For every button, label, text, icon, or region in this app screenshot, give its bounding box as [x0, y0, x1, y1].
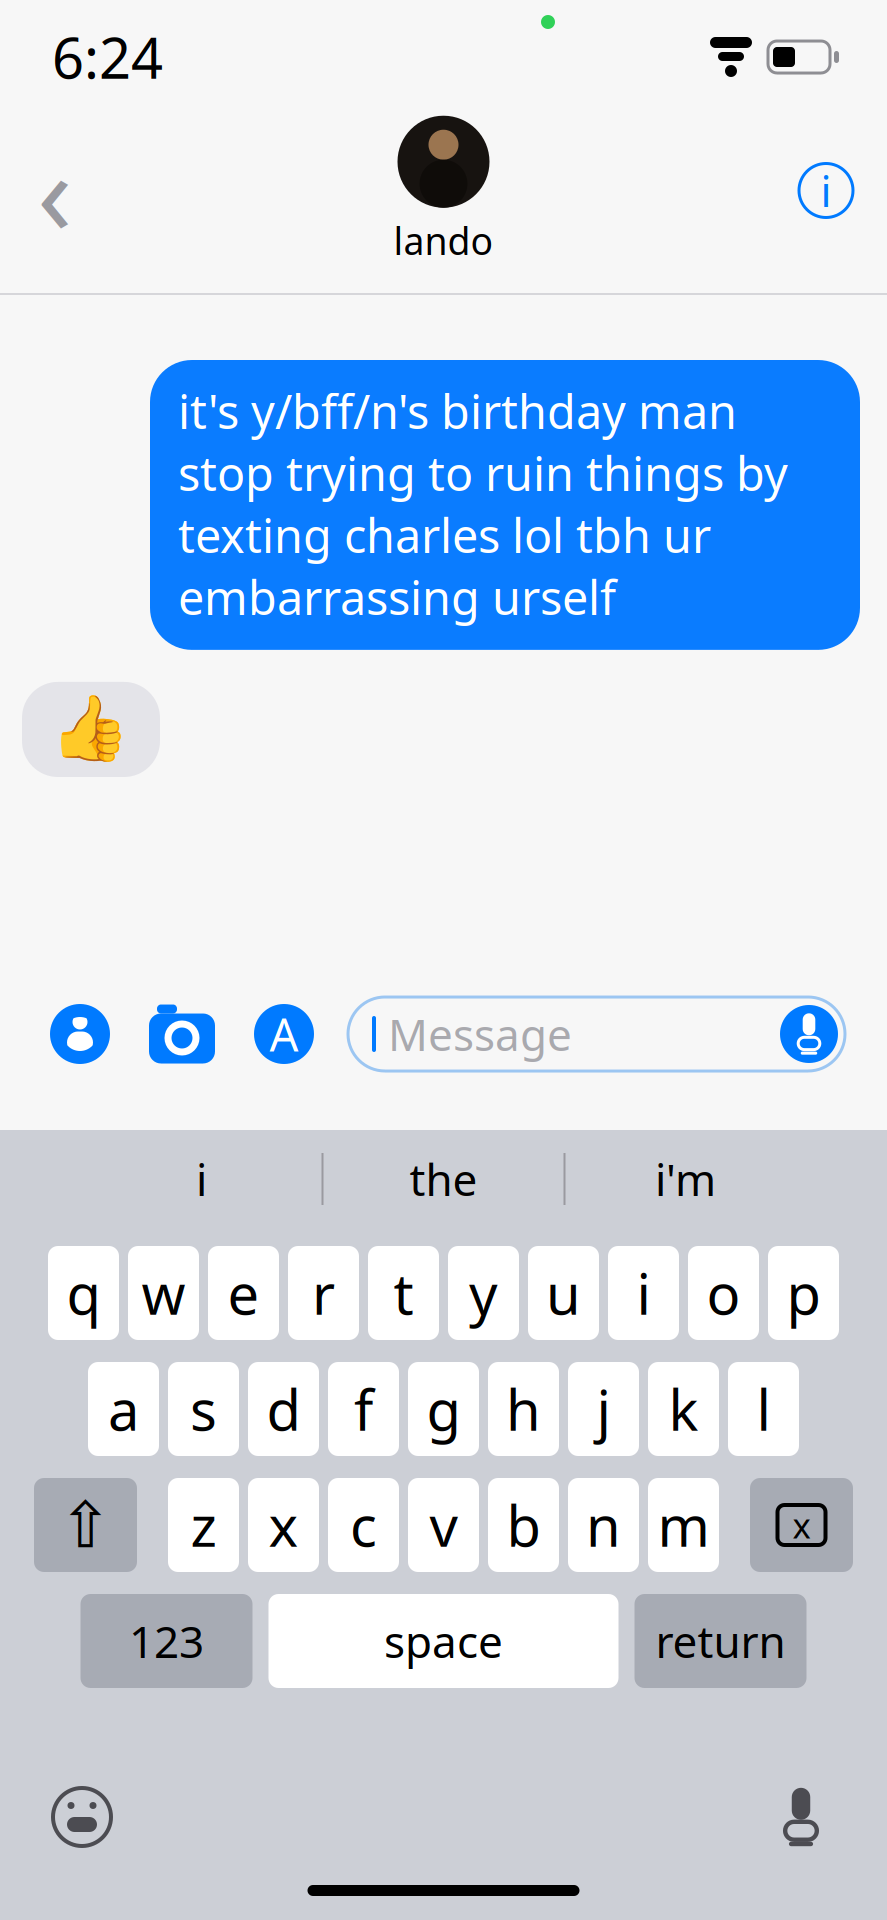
button[interactable]: Emoji keyboard	[40, 1775, 124, 1859]
button[interactable]: Shift	[34, 1478, 137, 1572]
staticText: k	[668, 1372, 698, 1446]
staticText: x	[792, 1502, 810, 1548]
staticText: r	[312, 1256, 335, 1330]
staticText: ‹	[37, 114, 73, 267]
staticText: a	[108, 1372, 139, 1446]
button[interactable]: p	[768, 1246, 839, 1340]
button[interactable]: c	[328, 1478, 399, 1572]
button[interactable]: Apps	[252, 1002, 316, 1066]
button[interactable]: 123	[80, 1594, 252, 1688]
button[interactable]: z	[168, 1478, 239, 1572]
button[interactable]: y	[448, 1246, 519, 1340]
button[interactable]: i	[608, 1246, 679, 1340]
button[interactable]: Dictation	[759, 1775, 843, 1859]
button[interactable]: x	[248, 1478, 319, 1572]
staticText: y	[469, 1256, 498, 1330]
button[interactable]: space	[268, 1594, 618, 1688]
staticText: b	[506, 1488, 540, 1562]
staticText: e	[227, 1256, 259, 1330]
staticText: i	[636, 1256, 650, 1330]
button[interactable]: n	[568, 1478, 639, 1572]
button[interactable]: k	[648, 1362, 719, 1456]
button[interactable]: lando contact photo	[397, 116, 489, 208]
button[interactable]: the	[323, 1130, 563, 1228]
staticText: p	[786, 1256, 820, 1330]
button[interactable]: h	[488, 1362, 559, 1456]
button[interactable]: u	[528, 1246, 599, 1340]
staticText: it's y/bff/n's birthday man stop trying …	[178, 380, 788, 628]
button[interactable]: j	[568, 1362, 639, 1456]
staticText: ⇧	[58, 1489, 112, 1561]
staticText: w	[141, 1256, 185, 1330]
staticText: c	[350, 1488, 377, 1562]
button[interactable]: q	[48, 1246, 119, 1340]
staticText: n	[586, 1488, 621, 1562]
button[interactable]: w	[128, 1246, 199, 1340]
staticText: Message	[388, 1005, 572, 1063]
button[interactable]: Details	[783, 142, 869, 238]
staticText: i	[820, 162, 831, 219]
staticText: lando	[393, 216, 493, 265]
staticText: l	[756, 1372, 770, 1446]
button[interactable]: l	[728, 1362, 799, 1456]
staticText: j	[596, 1372, 610, 1446]
button[interactable]: d	[248, 1362, 319, 1456]
button[interactable]: Camera	[148, 1002, 216, 1066]
button[interactable]: f	[328, 1362, 399, 1456]
button[interactable]: b	[488, 1478, 559, 1572]
staticText: z	[190, 1488, 216, 1562]
button[interactable]: o	[688, 1246, 759, 1340]
button[interactable]: e	[208, 1246, 279, 1340]
button[interactable]: a	[88, 1362, 159, 1456]
button[interactable]: return	[634, 1594, 806, 1688]
staticText: 6:24	[52, 20, 163, 94]
staticText: the	[409, 1150, 477, 1208]
button[interactable]: s	[168, 1362, 239, 1456]
button[interactable]: g	[408, 1362, 479, 1456]
staticText: g	[426, 1372, 460, 1446]
staticText: v	[429, 1488, 457, 1562]
button[interactable]: i	[81, 1130, 321, 1228]
button[interactable]: v	[408, 1478, 479, 1572]
staticText: q	[66, 1256, 100, 1330]
staticText: h	[506, 1372, 541, 1446]
button[interactable]: r	[288, 1246, 359, 1340]
button[interactable]: i'm	[565, 1130, 805, 1228]
button[interactable]: Back	[12, 142, 98, 238]
staticText: i	[196, 1150, 207, 1208]
button[interactable]: Message text field	[348, 997, 845, 1071]
button[interactable]: App Store	[48, 1002, 112, 1066]
button[interactable]: Delete	[750, 1478, 853, 1572]
staticText: o	[706, 1256, 740, 1330]
staticText: f	[354, 1372, 373, 1446]
staticText: space	[384, 1612, 503, 1670]
staticText: x	[268, 1488, 298, 1562]
staticText: i'm	[655, 1150, 716, 1208]
staticText: u	[546, 1256, 581, 1330]
staticText: A	[269, 1004, 298, 1064]
staticText: d	[266, 1372, 300, 1446]
staticText: 123	[129, 1612, 204, 1670]
button[interactable]: m	[648, 1478, 719, 1572]
button[interactable]: t	[368, 1246, 439, 1340]
staticText: m	[657, 1488, 709, 1562]
staticText: t	[393, 1256, 413, 1330]
staticText: return	[655, 1612, 785, 1670]
staticText: 👍	[50, 692, 130, 765]
staticText: s	[190, 1372, 217, 1446]
